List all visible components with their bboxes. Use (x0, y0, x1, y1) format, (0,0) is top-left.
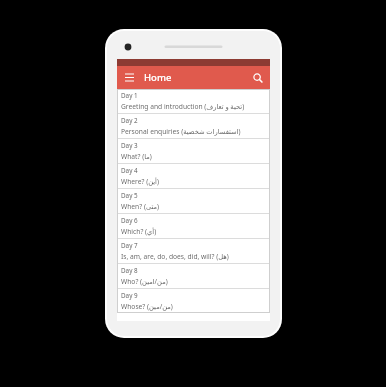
staticText: Who? (من/امين) (121, 277, 168, 286)
button[interactable]: Day 5 (117, 189, 270, 213)
button[interactable]: Day 6 (117, 214, 270, 238)
staticText: Day 6 (121, 216, 138, 225)
staticText: When? (متى) (121, 202, 160, 211)
staticText: Day 8 (121, 266, 138, 275)
staticText: Day 1 (121, 91, 138, 100)
button[interactable]: Day 4 (117, 164, 270, 188)
staticText: Day 5 (121, 191, 138, 200)
staticText: What? (ما) (121, 152, 152, 161)
button[interactable]: Day 2 (117, 114, 270, 138)
staticText: Is, am, are, do, does, did, will? (هل) (121, 252, 229, 261)
staticText: Which? (أي) (121, 227, 157, 236)
button[interactable]: Day 7 (117, 239, 270, 263)
staticText: Day 9 (121, 291, 138, 300)
staticText: Whose? (من/مين) (121, 302, 173, 311)
staticText: Home (144, 71, 172, 84)
button[interactable]: Search (251, 71, 264, 84)
staticText: Day 4 (121, 166, 138, 175)
staticText: Day 7 (121, 241, 138, 250)
staticText: Personal enquiries (استفسارات شخصية) (121, 127, 241, 136)
button[interactable]: Day 9 (117, 289, 270, 313)
button[interactable]: Open navigation drawer (123, 71, 136, 84)
staticText: Day 3 (121, 141, 138, 150)
button[interactable]: Day 3 (117, 139, 270, 163)
staticText: Where? (أين) (121, 177, 159, 186)
button[interactable]: Day 8 (117, 264, 270, 288)
button[interactable]: Day 1 (117, 89, 270, 113)
staticText: Greeting and introduction (تحية و تعارف) (121, 102, 245, 111)
staticText: Day 2 (121, 116, 138, 125)
